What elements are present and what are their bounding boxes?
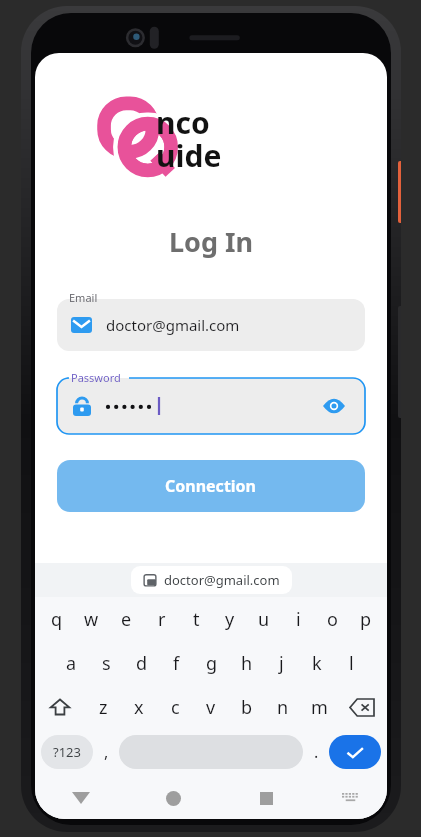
staticText: w [84,607,99,632]
button[interactable]: Backspace [337,685,387,729]
button[interactable]: Back [35,777,127,819]
button[interactable]: Hide keyboard [313,777,387,819]
button[interactable]: h [229,641,264,685]
button[interactable]: l [334,641,369,685]
button[interactable]: i [281,597,315,641]
staticText: t [193,607,200,632]
staticText: l [349,651,354,676]
staticText: k [312,651,322,676]
button[interactable]: Show password [57,378,365,434]
staticText: b [241,695,253,720]
button[interactable]: . [303,729,329,775]
staticText: h [241,651,253,676]
button[interactable]: w [74,597,109,641]
button[interactable]: d [124,641,159,685]
button[interactable]: v [193,685,229,729]
button[interactable]: t [179,597,213,641]
button[interactable]: o [315,597,349,641]
button[interactable]: g [194,641,229,685]
staticText: doctor@gmail.com [106,315,240,335]
button[interactable]: j [264,641,299,685]
staticText: x [134,695,144,720]
button[interactable]: x [121,685,157,729]
button[interactable]: s [89,641,124,685]
button[interactable]: m [301,685,337,729]
button[interactable]: y [213,597,247,641]
staticText: c [171,695,180,720]
staticText: s [102,651,111,676]
button[interactable]: k [299,641,334,685]
button[interactable]: Show password [319,391,349,421]
button[interactable]: Shift [35,685,85,729]
staticText: m [311,695,328,720]
staticText: z [99,695,108,720]
button[interactable]: r [144,597,179,641]
staticText: e [121,607,132,632]
button[interactable]: z [85,685,121,729]
staticText: i [296,607,301,632]
button[interactable]: b [229,685,265,729]
staticText: g [206,651,218,676]
button[interactable]: p [349,597,383,641]
staticText: o [327,607,338,632]
button[interactable]: a [53,641,89,685]
button[interactable]: q [39,597,74,641]
staticText: j [279,651,284,676]
button[interactable]: Recents [220,777,313,819]
button[interactable]: c [157,685,193,729]
staticText: r [158,607,166,632]
button[interactable]: , [93,729,119,775]
button[interactable]: Enter [329,735,381,769]
staticText: u [258,607,270,632]
button[interactable]: doctor@gmail.com [131,566,292,594]
staticText: f [173,651,180,676]
button[interactable]: n [265,685,301,729]
staticText: q [51,607,63,632]
staticText: d [136,651,148,676]
staticText: p [360,607,372,632]
staticText: ?123 [53,743,81,761]
button[interactable]: doctor@gmail.com [57,299,365,351]
button[interactable]: u [247,597,281,641]
button[interactable]: f [159,641,194,685]
staticText: doctor@gmail.com [164,571,280,589]
button[interactable]: Home [127,777,220,819]
button[interactable]: e [109,597,144,641]
staticText: n [277,695,289,720]
staticText: , [104,741,109,763]
button[interactable]: Connection [57,460,365,512]
staticText: . [314,741,319,763]
staticText: Email [69,290,98,305]
staticText: Password [71,370,121,385]
staticText: nco [156,102,210,143]
staticText: Connection [165,475,257,497]
staticText: a [66,651,77,676]
staticText: y [225,607,235,632]
staticText: Log In [169,223,254,260]
staticText: v [206,695,216,720]
staticText: uide [156,135,222,176]
button[interactable]: ?123 [41,735,93,769]
button[interactable]: Space [119,735,303,769]
